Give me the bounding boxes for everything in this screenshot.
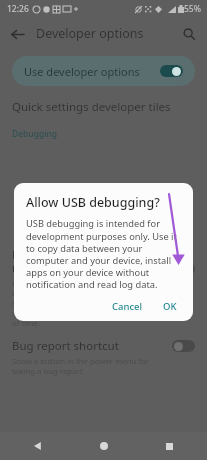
button[interactable]: Back <box>26 434 50 458</box>
staticText: Cancel <box>112 300 143 313</box>
button[interactable]: Navigate up <box>4 21 30 47</box>
staticText: Allow USB debugging? <box>26 194 160 211</box>
button[interactable]: Bug report shortcut <box>0 335 207 379</box>
staticText: Developer options <box>36 25 144 42</box>
button[interactable]: Home <box>92 434 116 458</box>
button[interactable]: Toggle <box>172 340 195 352</box>
staticText: Use developer options <box>24 64 160 79</box>
button[interactable]: Use developer options <box>12 56 195 86</box>
staticText: Show a button in the power menu for taki… <box>12 356 166 376</box>
button[interactable]: Disable ADB authorisation timeout <box>0 244 207 331</box>
button[interactable]: Quick settings developer tiles <box>12 96 195 118</box>
button[interactable]: Recents <box>157 434 181 458</box>
staticText: Disable ADB authorisation timeout <box>12 247 166 276</box>
button[interactable]: Cancel <box>106 296 149 317</box>
staticText: 12:26 <box>7 3 29 15</box>
staticText: Bug report shortcut <box>12 338 119 354</box>
staticText: OK <box>163 300 177 313</box>
button[interactable]: Search <box>176 21 202 47</box>
staticText: Disable automatic revocation of ADB auth… <box>12 278 166 328</box>
button[interactable]: OK <box>157 296 183 317</box>
button[interactable]: Toggle <box>160 65 183 77</box>
staticText: 55% <box>184 3 201 15</box>
staticText: USB debugging is intended for developmen… <box>26 217 183 290</box>
staticText: Quick settings developer tiles <box>12 99 171 115</box>
button[interactable]: Toggle <box>172 263 195 275</box>
staticText: Debugging <box>12 128 58 140</box>
